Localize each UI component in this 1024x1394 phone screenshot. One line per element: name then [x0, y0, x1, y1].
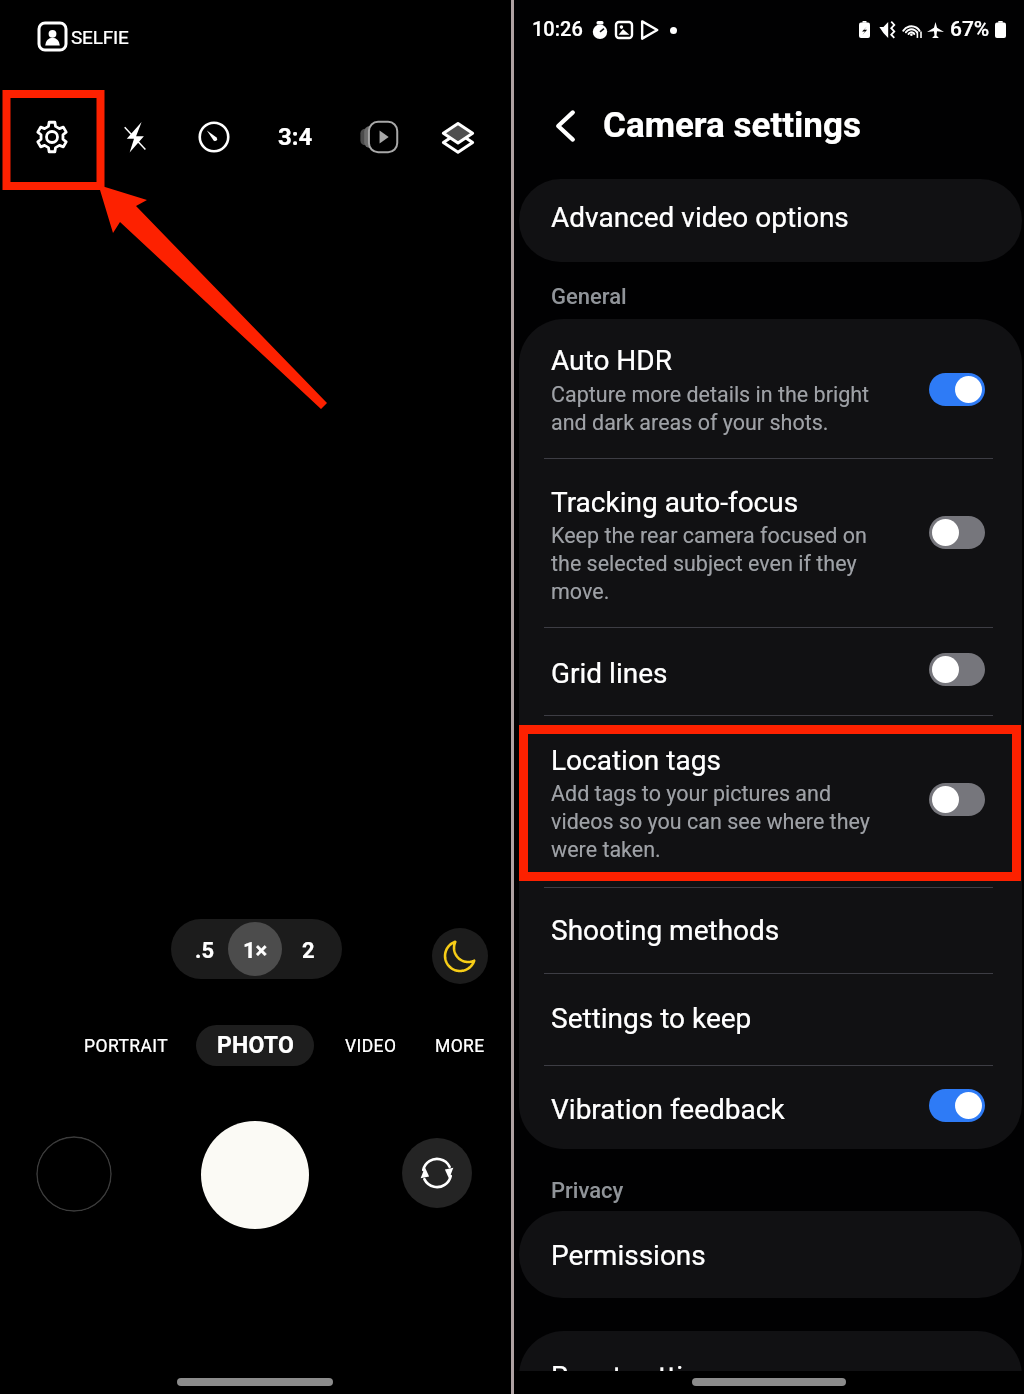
button[interactable]: Timer [185, 108, 243, 166]
button[interactable]: PHOTO [196, 1025, 314, 1066]
button[interactable] [519, 888, 1022, 973]
staticText: Keep the rear camera focused on the sele… [551, 523, 867, 604]
button[interactable]: Night mode [432, 928, 488, 984]
button[interactable]: Tracking auto-focus [929, 516, 985, 549]
button[interactable]: Advanced video options [519, 179, 1022, 262]
button[interactable] [519, 974, 1022, 1065]
button[interactable]: Aspect ratio 3:4 [266, 108, 324, 166]
button[interactable] [519, 716, 1022, 887]
button[interactable]: Filters [429, 108, 487, 166]
staticText: SELFIE [71, 26, 129, 48]
staticText: Grid lines [551, 657, 668, 690]
staticText: 10:26 [532, 17, 583, 40]
staticText: Settings to keep [551, 1002, 752, 1035]
button[interactable] [519, 1066, 1022, 1149]
staticText: Advanced video options [551, 201, 849, 234]
button[interactable] [519, 459, 1022, 627]
staticText: .5 [195, 938, 215, 964]
button[interactable]: Grid lines [929, 653, 985, 686]
button[interactable]: Gallery [36, 1136, 112, 1212]
staticText: Add tags to your pictures and videos so … [551, 781, 870, 862]
staticText: General [551, 284, 627, 310]
staticText: PHOTO [217, 1032, 294, 1059]
button[interactable]: Flash off [105, 108, 163, 166]
button[interactable]: Location tags [929, 783, 985, 816]
staticText: 67% [950, 17, 990, 42]
staticText: Vibration feedback [551, 1093, 785, 1126]
button[interactable]: PORTRAIT [71, 1025, 181, 1067]
button[interactable]: .5 [179, 921, 231, 979]
staticText: Permissions [551, 1239, 706, 1272]
staticText: 3:4 [278, 123, 313, 151]
button[interactable]: Selfie mode [30, 14, 145, 60]
staticText: PORTRAIT [84, 1036, 168, 1057]
staticText: MORE [435, 1036, 485, 1057]
button[interactable]: 2 [282, 921, 334, 979]
button[interactable]: MORE [405, 1025, 515, 1067]
button[interactable]: Reset settings [519, 1331, 1022, 1394]
staticText: 1× [243, 938, 268, 964]
staticText: Auto HDR [551, 344, 672, 377]
staticText: Privacy [551, 1178, 624, 1204]
button[interactable]: VIDEO [316, 1025, 426, 1067]
staticText: VIDEO [345, 1036, 397, 1057]
button[interactable]: Motion photo [350, 108, 408, 166]
staticText: 2 [302, 938, 315, 964]
button[interactable]: Vibration feedback [929, 1089, 985, 1122]
staticText: Camera settings [603, 105, 861, 146]
staticText: Capture more details in the bright and d… [551, 382, 870, 435]
staticText: Shooting methods [551, 914, 780, 947]
button[interactable]: Take photo [201, 1121, 309, 1229]
button[interactable]: Permissions [519, 1211, 1022, 1298]
button[interactable]: Back [540, 100, 592, 152]
staticText: Reset settings [551, 1360, 729, 1393]
button[interactable]: 1× [228, 921, 282, 979]
staticText: Location tags [551, 744, 721, 777]
button[interactable]: Auto HDR [929, 373, 985, 406]
button[interactable]: Switch camera [402, 1138, 472, 1208]
button[interactable] [519, 319, 1022, 458]
button[interactable] [519, 628, 1022, 715]
button[interactable]: Settings [23, 108, 81, 166]
staticText: Tracking auto-focus [551, 486, 799, 519]
